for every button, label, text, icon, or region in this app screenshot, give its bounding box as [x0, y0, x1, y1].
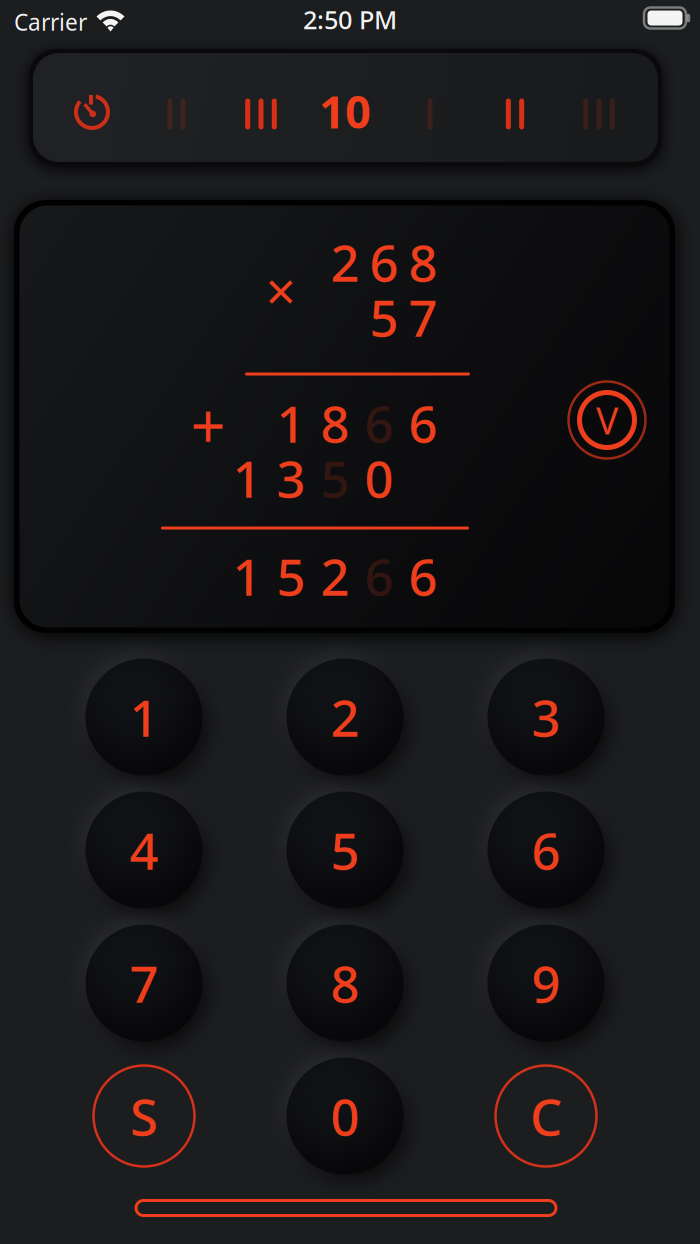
- staticText: Carrier: [14, 7, 87, 37]
- staticText: 6: [408, 389, 437, 457]
- staticText: 5: [320, 444, 349, 512]
- button[interactable]: 0: [282, 1053, 408, 1179]
- staticText: 2: [330, 228, 359, 296]
- button[interactable]: 5: [282, 787, 408, 913]
- staticText: 6: [364, 389, 393, 457]
- staticText: 1: [129, 683, 158, 751]
- staticText: 10: [319, 81, 371, 141]
- button[interactable]: 2: [282, 654, 408, 780]
- staticText: S: [130, 1082, 158, 1150]
- button[interactable]: S: [81, 1053, 207, 1179]
- button[interactable]: 9: [483, 920, 609, 1046]
- button[interactable]: Check answer: [563, 376, 651, 464]
- staticText: 2:50 PM: [303, 3, 397, 36]
- button[interactable]: 1: [81, 654, 207, 780]
- button[interactable]: 4: [81, 787, 207, 913]
- staticText: 1: [276, 389, 305, 457]
- staticText: 6: [408, 542, 437, 610]
- staticText: 5: [330, 816, 359, 884]
- staticText: 0: [364, 444, 393, 512]
- button[interactable]: C: [483, 1053, 609, 1179]
- staticText: 5: [369, 283, 398, 351]
- staticText: 8: [320, 389, 349, 457]
- staticText: 7: [129, 949, 158, 1017]
- button[interactable]: Timer: [68, 88, 116, 136]
- staticText: C: [530, 1082, 562, 1150]
- staticText: 3: [531, 683, 560, 751]
- button[interactable]: Home: [136, 1200, 556, 1215]
- staticText: 1: [232, 444, 261, 512]
- staticText: 6: [364, 542, 393, 610]
- staticText: 6: [531, 816, 560, 884]
- staticText: 2: [320, 542, 349, 610]
- button[interactable]: 6: [483, 787, 609, 913]
- staticText: 9: [531, 949, 560, 1017]
- button[interactable]: 7: [81, 920, 207, 1046]
- staticText: 6: [369, 228, 398, 296]
- staticText: 4: [129, 816, 158, 884]
- staticText: 5: [276, 542, 305, 610]
- staticText: 1: [232, 542, 261, 610]
- staticText: +: [190, 384, 225, 466]
- staticText: 2: [330, 683, 359, 751]
- staticText: 0: [330, 1082, 359, 1150]
- button[interactable]: 8: [282, 920, 408, 1046]
- staticText: ×: [265, 255, 296, 325]
- staticText: 7: [408, 283, 437, 351]
- staticText: 8: [408, 228, 437, 296]
- staticText: V: [596, 395, 618, 445]
- staticText: 3: [276, 444, 305, 512]
- staticText: 8: [330, 949, 359, 1017]
- button[interactable]: 3: [483, 654, 609, 780]
